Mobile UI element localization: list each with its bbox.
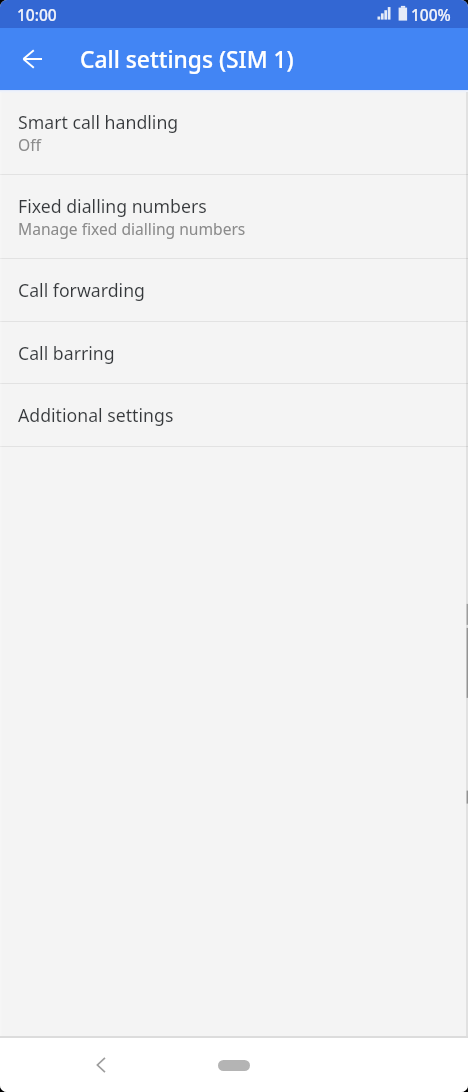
button[interactable]: Additional settings bbox=[0, 384, 468, 447]
button[interactable]: Call barring bbox=[0, 322, 468, 384]
button[interactable]: Fixed dialling numbers bbox=[0, 175, 468, 259]
button[interactable]: Smart call handling bbox=[0, 90, 468, 175]
staticText: Call barring bbox=[18, 341, 115, 365]
staticText: 100% bbox=[411, 4, 451, 25]
staticText: Manage fixed dialling numbers bbox=[18, 218, 246, 239]
staticText: Fixed dialling numbers bbox=[18, 194, 207, 218]
staticText: Off bbox=[18, 134, 41, 155]
button[interactable]: Call forwarding bbox=[0, 259, 468, 322]
staticText: Additional settings bbox=[18, 403, 174, 427]
button[interactable]: Home bbox=[202, 1049, 266, 1081]
staticText: Call settings (SIM 1) bbox=[80, 44, 294, 75]
staticText: 10:00 bbox=[17, 4, 57, 25]
staticText: Smart call handling bbox=[18, 110, 179, 134]
staticText: Call forwarding bbox=[18, 278, 145, 302]
button[interactable]: Navigate up bbox=[8, 35, 56, 83]
button[interactable]: Back bbox=[78, 1042, 124, 1088]
